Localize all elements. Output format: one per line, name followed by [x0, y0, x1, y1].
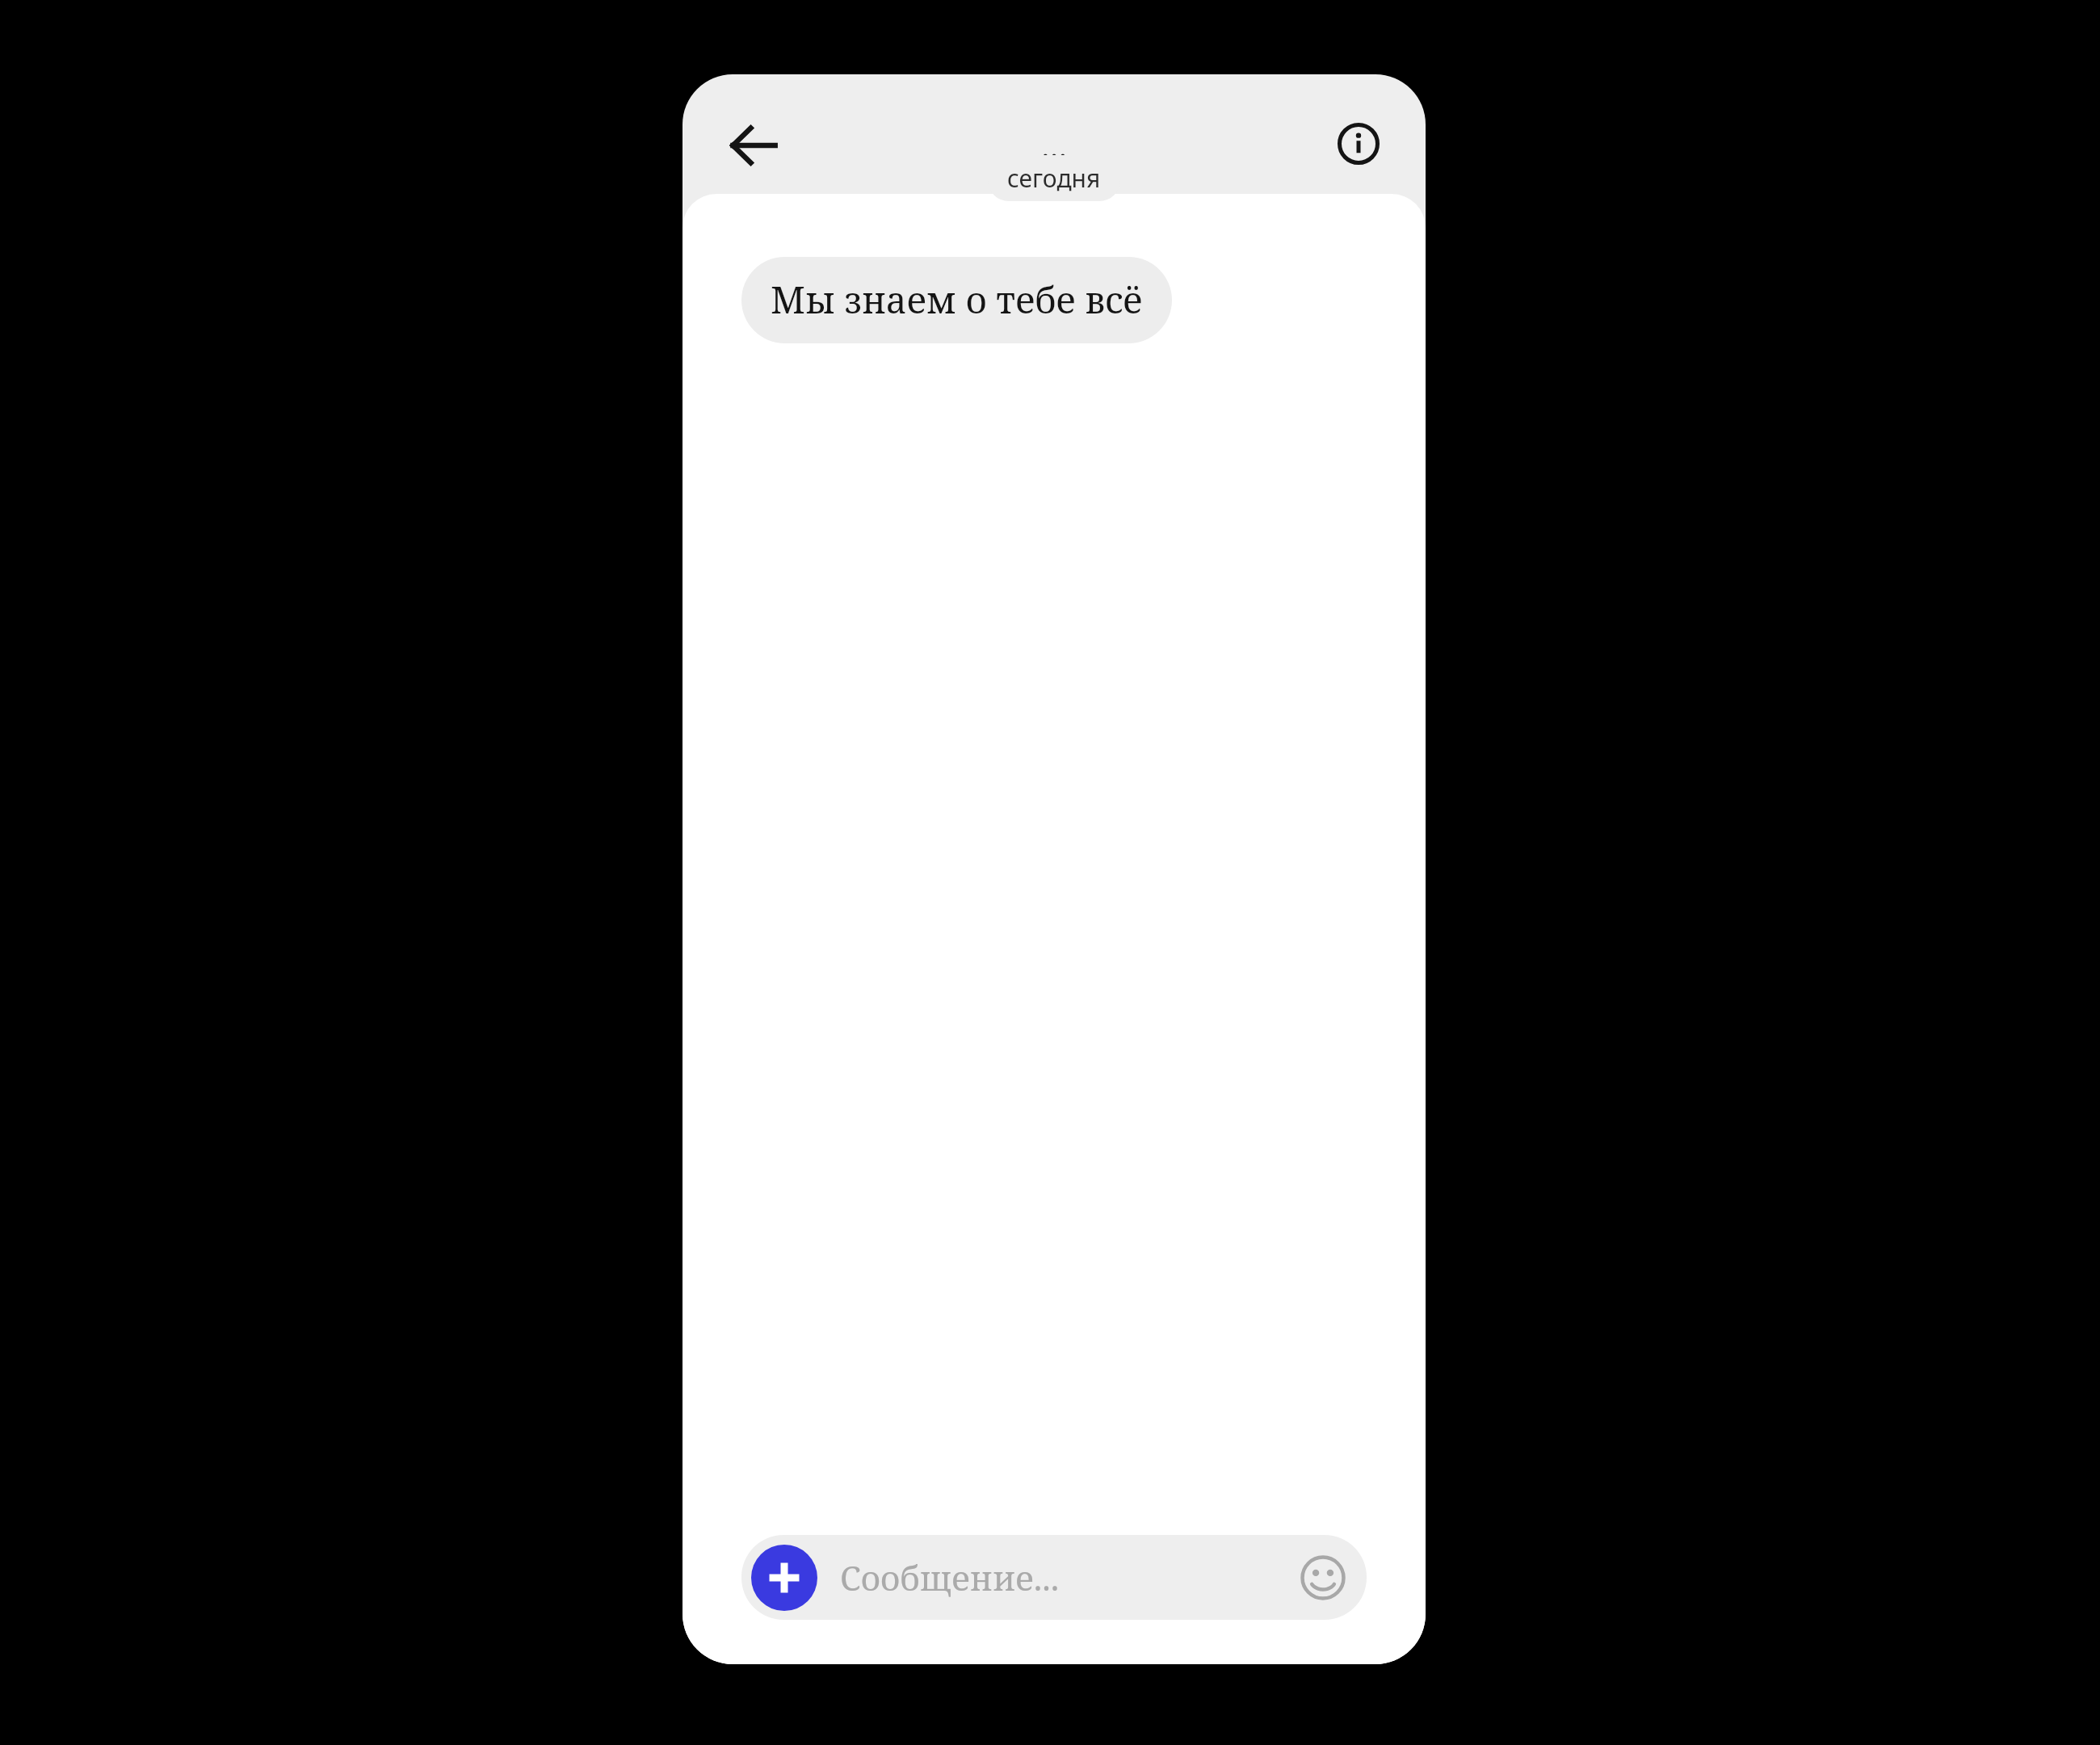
button[interactable]: Back — [716, 108, 791, 183]
button[interactable]: Мы знаем о тебе всё — [741, 257, 1172, 343]
button[interactable]: Attach — [751, 1545, 817, 1611]
staticText: Мы знаем о тебе всё — [771, 275, 1143, 324]
button[interactable]: Emoji — [1287, 1542, 1359, 1613]
button[interactable]: Info — [1321, 107, 1396, 181]
staticText: сегодня — [1007, 162, 1101, 195]
staticText: Сообщение... — [840, 1554, 1060, 1600]
button[interactable]: ... — [989, 107, 1119, 184]
button[interactable]: Attach — [741, 1535, 1367, 1620]
staticText: ... — [1041, 124, 1068, 167]
